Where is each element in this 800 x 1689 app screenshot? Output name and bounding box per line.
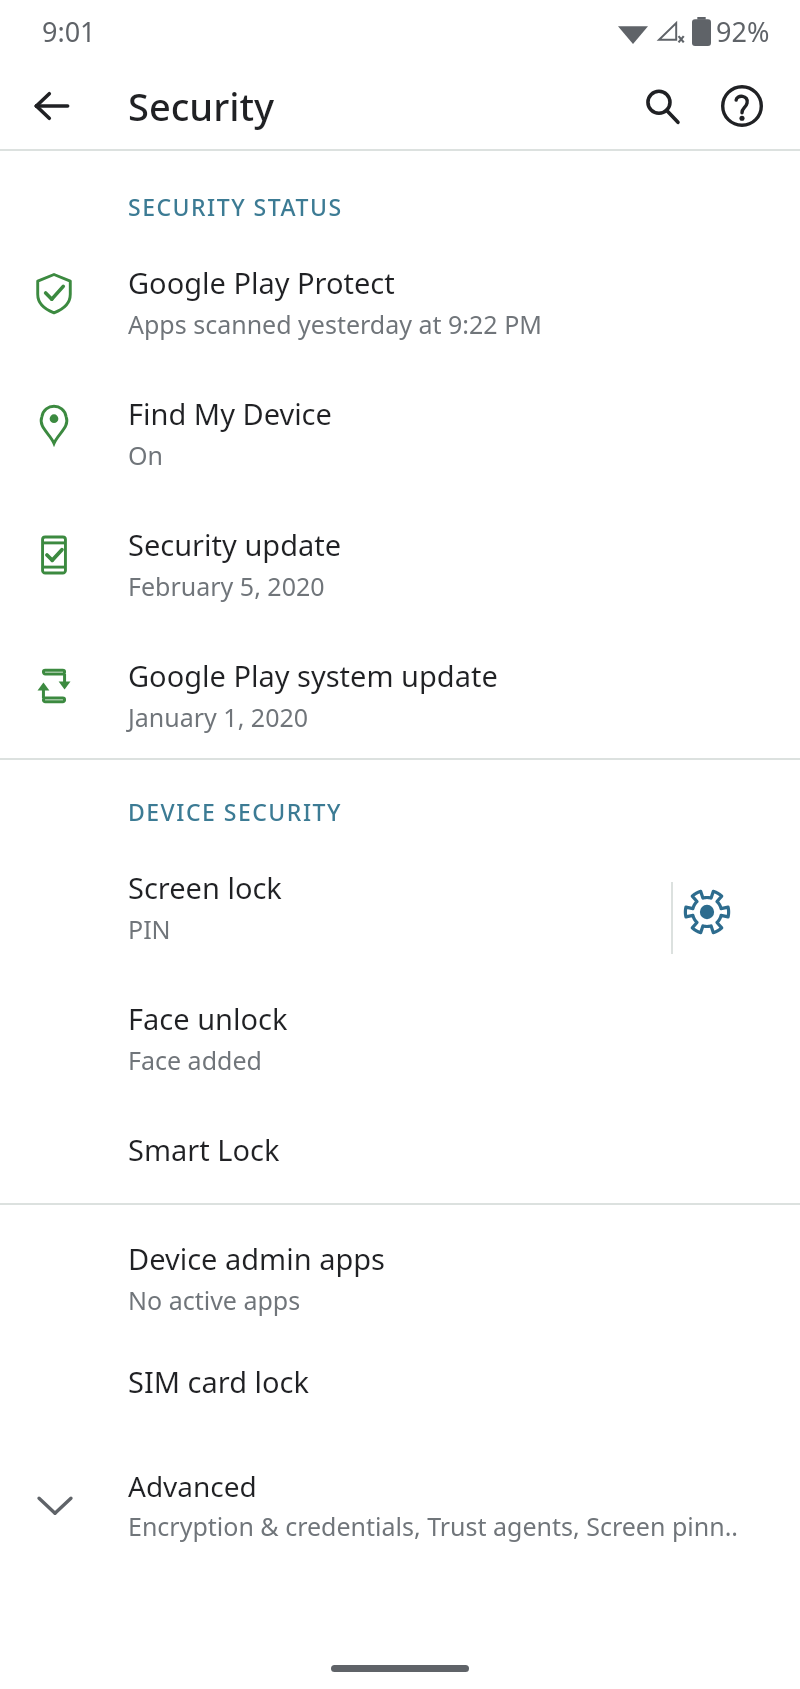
- button[interactable]: Screen lock: [0, 846, 640, 977]
- button[interactable]: Advanced: [0, 1433, 800, 1565]
- staticText: Face unlock: [128, 999, 288, 1038]
- button[interactable]: Screen lock settings: [680, 846, 800, 977]
- button[interactable]: SIM card lock: [0, 1336, 800, 1433]
- staticText: January 1, 2020: [128, 700, 309, 734]
- staticText: Encryption & credentials, Trust agents, …: [128, 1509, 739, 1543]
- staticText: SIM card lock: [128, 1362, 309, 1401]
- staticText: PIN: [128, 912, 171, 946]
- button[interactable]: Face unlock: [0, 977, 800, 1108]
- staticText: 92%: [716, 13, 770, 50]
- staticText: Security: [128, 80, 275, 132]
- button[interactable]: Google Play Protect: [0, 241, 800, 372]
- staticText: DEVICE SECURITY: [128, 796, 342, 827]
- staticText: 9:01: [42, 13, 96, 50]
- staticText: Device admin apps: [128, 1239, 385, 1278]
- staticText: Google Play Protect: [128, 263, 395, 302]
- button[interactable]: Google Play system update: [0, 634, 800, 758]
- staticText: February 5, 2020: [128, 569, 325, 603]
- staticText: Advanced: [128, 1467, 257, 1505]
- staticText: No active apps: [128, 1283, 301, 1317]
- staticText: Google Play system update: [128, 656, 498, 695]
- button[interactable]: Back: [16, 70, 88, 142]
- button[interactable]: Find My Device: [0, 372, 800, 503]
- button[interactable]: Search: [624, 68, 700, 144]
- staticText: Apps scanned yesterday at 9:22 PM: [128, 307, 542, 341]
- staticText: Smart Lock: [128, 1130, 280, 1169]
- staticText: Screen lock: [128, 868, 282, 907]
- staticText: Find My Device: [128, 394, 332, 433]
- staticText: On: [128, 438, 163, 472]
- button[interactable]: Security update: [0, 503, 800, 634]
- staticText: Face added: [128, 1043, 262, 1077]
- button[interactable]: Smart Lock: [0, 1108, 800, 1203]
- staticText: SECURITY STATUS: [128, 191, 343, 222]
- staticText: Security update: [128, 525, 342, 564]
- button[interactable]: Device admin apps: [0, 1205, 800, 1336]
- button[interactable]: Help: [704, 68, 780, 144]
